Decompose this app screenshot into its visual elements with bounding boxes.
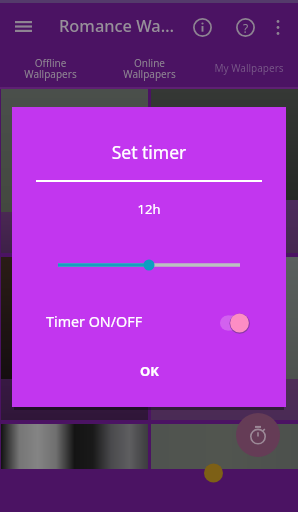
staticText: My Wallpapers: [214, 61, 284, 75]
button[interactable]: Online Wallpapers: [100, 47, 199, 89]
button[interactable]: [1, 379, 148, 420]
button[interactable]: [1, 424, 148, 469]
button[interactable]: More options: [266, 12, 290, 42]
staticText: OK: [140, 362, 159, 380]
staticText: 12h: [12, 200, 286, 218]
button[interactable]: [151, 200, 298, 253]
button[interactable]: Menu: [7, 13, 39, 39]
button[interactable]: [1, 257, 148, 379]
button[interactable]: [151, 257, 298, 379]
button[interactable]: My Wallpapers: [199, 47, 298, 89]
button[interactable]: Offline Wallpapers: [0, 47, 100, 89]
staticText: ?: [243, 20, 249, 36]
button[interactable]: OK: [12, 356, 286, 386]
button[interactable]: Help: [230, 12, 260, 42]
button[interactable]: Timer: [236, 413, 280, 457]
button[interactable]: [1, 212, 148, 253]
button[interactable]: Duration slider: [58, 258, 240, 272]
button[interactable]: Info: [187, 12, 217, 42]
staticText: Online Wallpapers: [123, 56, 176, 81]
staticText: Set timer: [12, 140, 286, 164]
staticText: Offline Wallpapers: [24, 56, 77, 81]
button[interactable]: [151, 379, 298, 420]
button[interactable]: [1, 89, 148, 212]
button[interactable]: [151, 89, 298, 200]
staticText: Romance Wa…: [59, 14, 194, 36]
staticText: Timer ON/OFF: [46, 312, 143, 331]
button[interactable]: Timer toggle: [220, 312, 249, 334]
button[interactable]: [151, 424, 298, 469]
